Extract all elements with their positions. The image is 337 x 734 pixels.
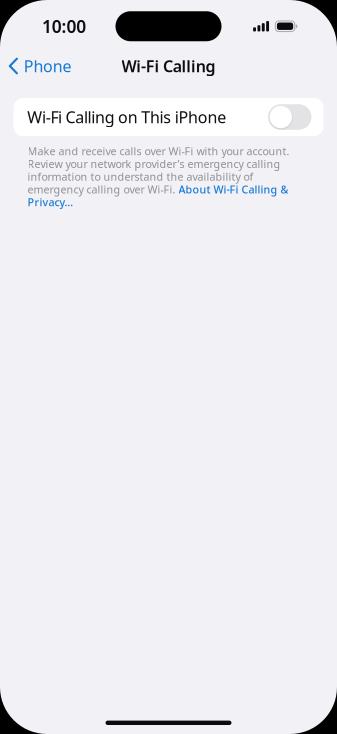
button[interactable]: Make and receive calls over Wi-Fi with y… (27, 144, 295, 209)
staticText: 10:00 (42, 15, 86, 38)
staticText: Wi-Fi Calling on This iPhone (27, 106, 226, 128)
button[interactable]: Phone (0, 49, 77, 83)
button[interactable]: Wi-Fi Calling on This iPhone (13, 98, 323, 136)
staticText: Phone (24, 55, 71, 77)
staticText: Wi-Fi Calling (121, 55, 215, 77)
staticText: Make and receive calls over Wi-Fi with y… (27, 144, 289, 209)
